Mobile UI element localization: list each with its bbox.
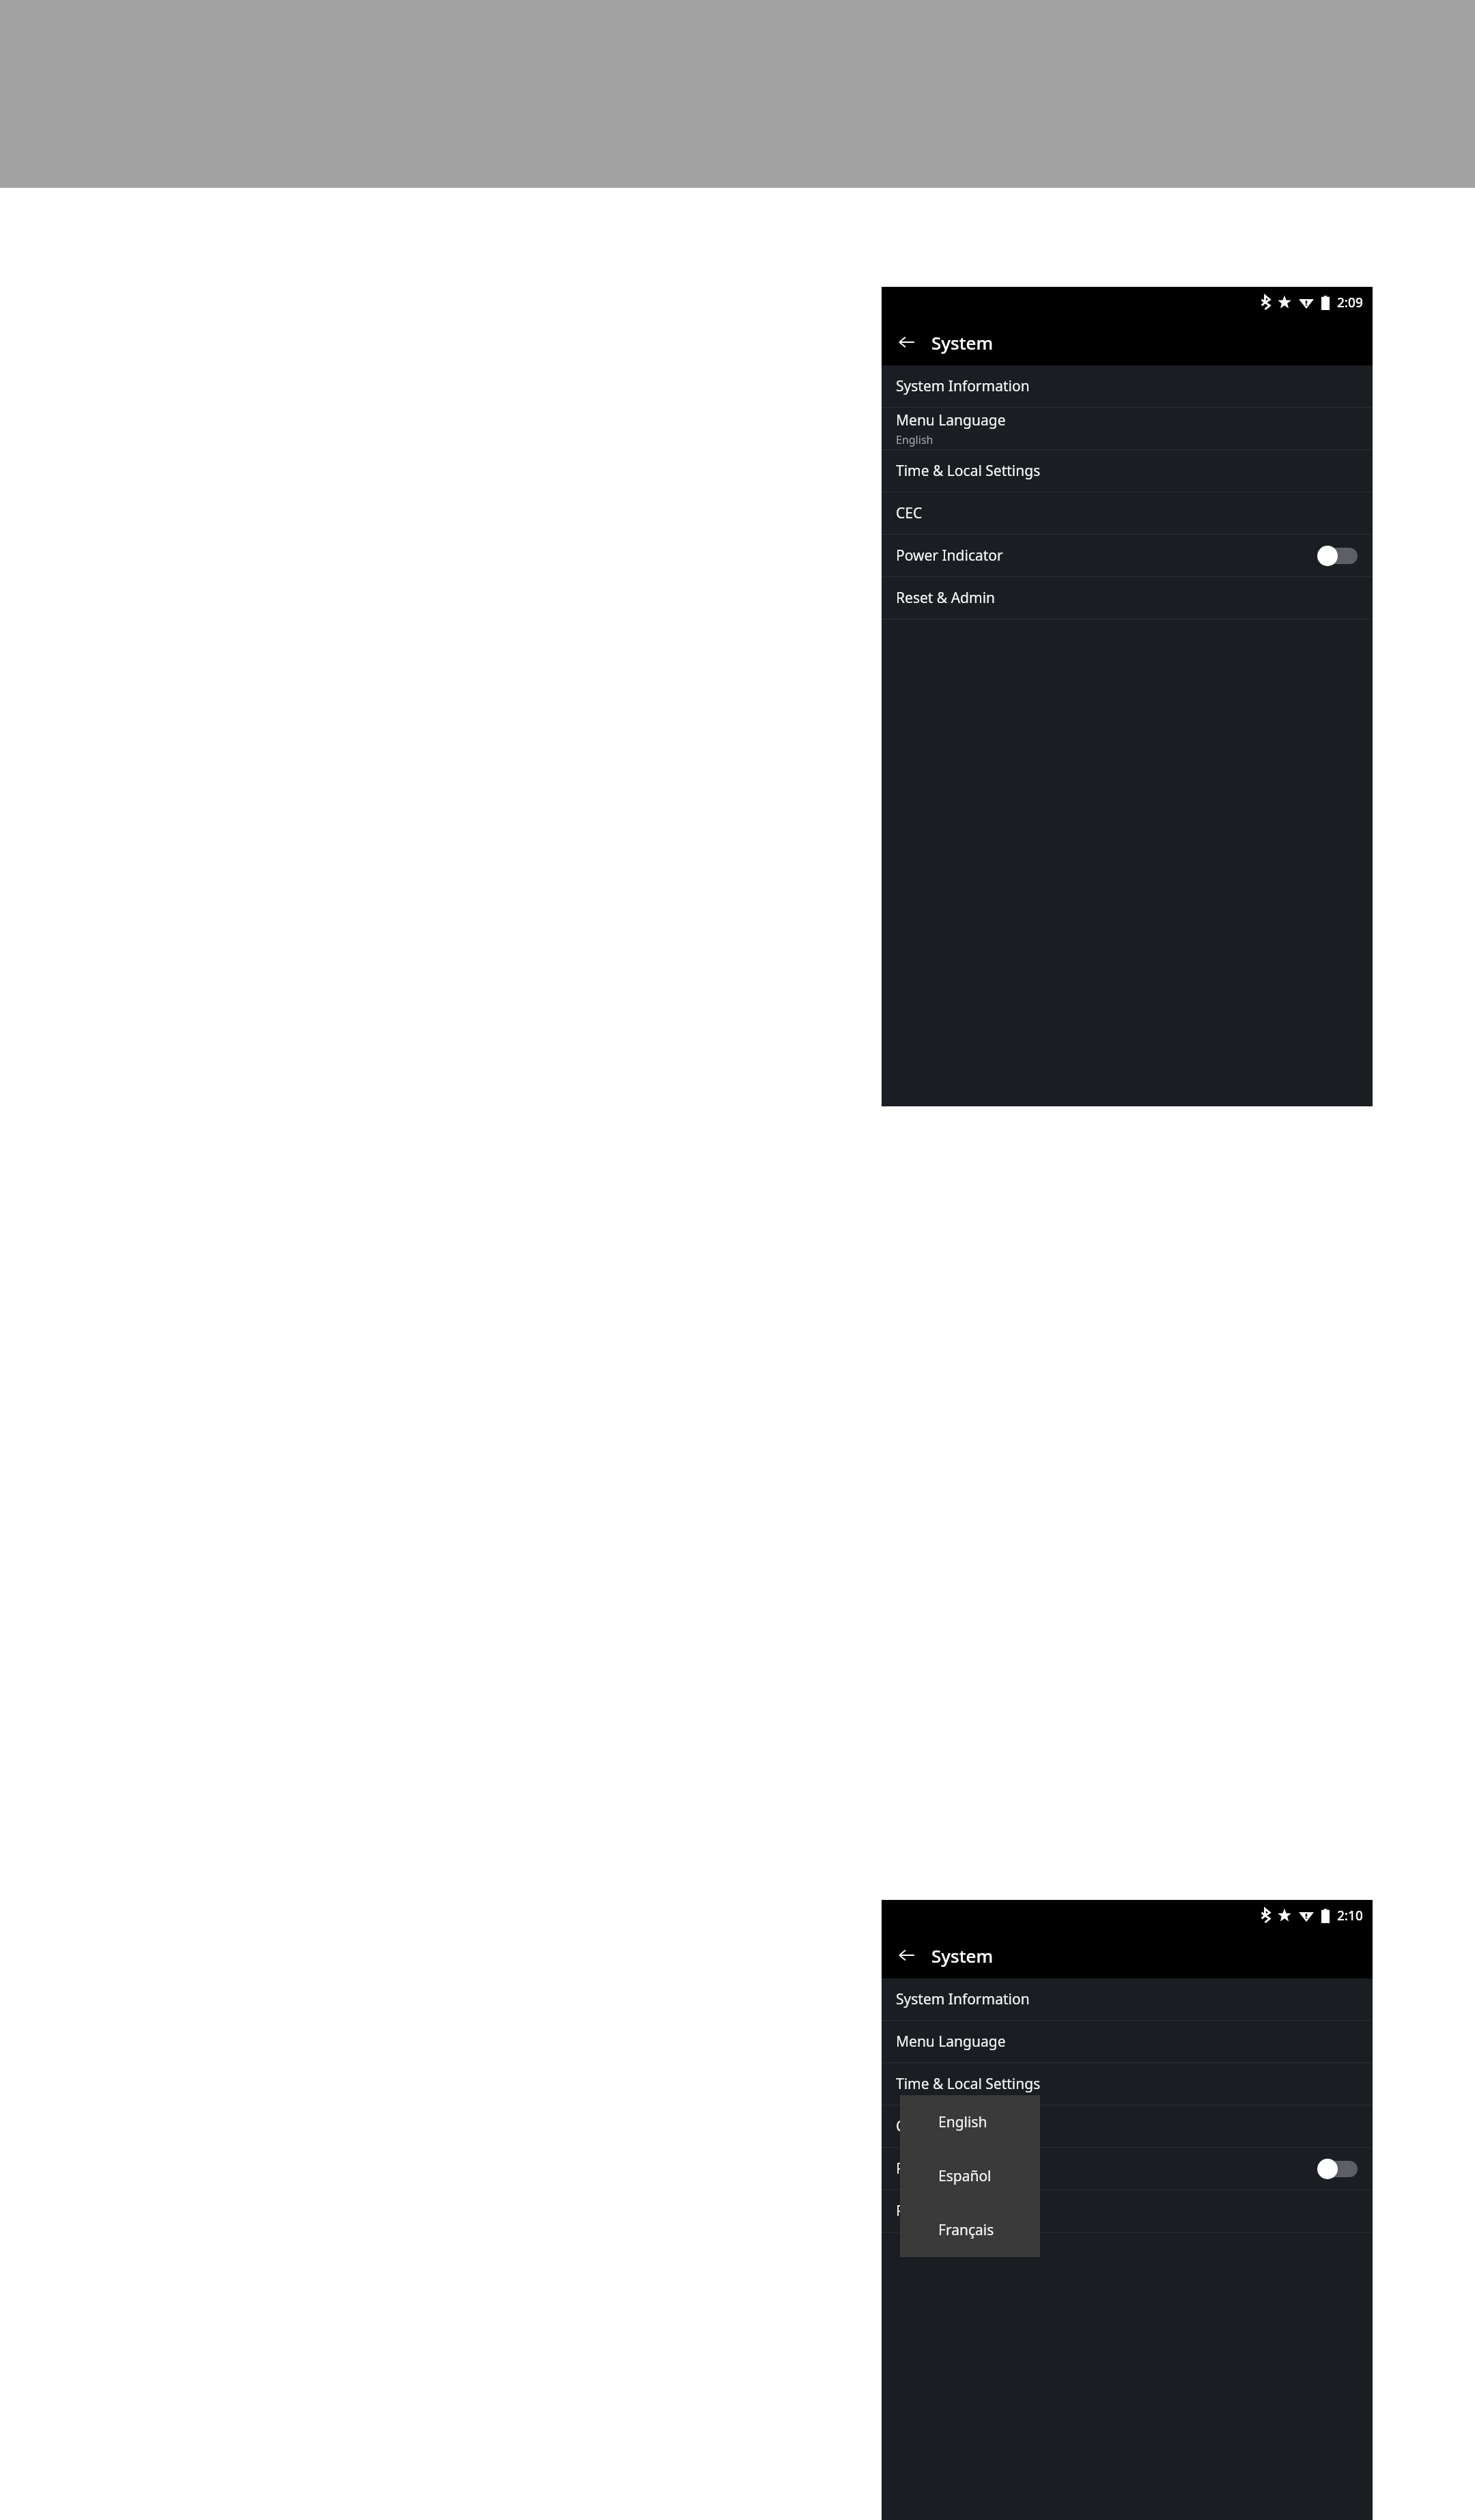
staticText: System Information xyxy=(896,376,1030,396)
button[interactable]: English xyxy=(900,2095,1040,2149)
staticText: 2:09 xyxy=(1337,294,1363,311)
staticText: System xyxy=(931,331,994,354)
button[interactable]: Back xyxy=(893,328,921,356)
staticText: Reset & Admin xyxy=(896,2201,996,2221)
staticText: Reset & Admin xyxy=(896,588,996,608)
button[interactable]: System Information xyxy=(882,1978,1373,2020)
staticText: English xyxy=(896,432,933,447)
button[interactable]: System Information xyxy=(882,365,1373,407)
button[interactable]: Time & Local Settings xyxy=(882,450,1373,492)
staticText: Time & Local Settings xyxy=(896,2074,1041,2094)
staticText: Français xyxy=(938,2220,994,2240)
button[interactable]: CEC xyxy=(882,492,1373,534)
button[interactable]: CEC xyxy=(882,2105,1373,2147)
staticText: Menu Language xyxy=(896,410,1006,430)
staticText: Power Indicator xyxy=(896,2159,1003,2179)
button[interactable]: Power Indicator toggle xyxy=(1316,544,1358,568)
button[interactable]: Back xyxy=(893,1942,921,1969)
button[interactable]: Power Indicator xyxy=(882,535,1373,576)
staticText: 2:10 xyxy=(1337,1907,1363,1924)
staticText: English xyxy=(938,2112,987,2132)
button[interactable]: Reset & Admin xyxy=(882,577,1373,619)
button[interactable]: Time & Local Settings xyxy=(882,2063,1373,2105)
button[interactable]: Español xyxy=(900,2149,1040,2203)
button[interactable]: Français xyxy=(900,2203,1040,2257)
staticText: CEC xyxy=(896,2116,923,2136)
staticText: System xyxy=(931,1944,994,1968)
staticText: CEC xyxy=(896,503,923,523)
staticText: Time & Local Settings xyxy=(896,461,1041,481)
button[interactable]: Power Indicator toggle xyxy=(1316,2157,1358,2181)
button[interactable]: Menu Language xyxy=(882,408,1373,449)
button[interactable]: Reset & Admin xyxy=(882,2190,1373,2232)
button[interactable]: Menu Language xyxy=(882,2021,1373,2062)
staticText: Menu Language xyxy=(896,2032,1006,2052)
button[interactable]: Power Indicator xyxy=(882,2148,1373,2189)
staticText: System Information xyxy=(896,1989,1030,2009)
staticText: Español xyxy=(938,2166,992,2186)
staticText: Power Indicator xyxy=(896,546,1003,565)
